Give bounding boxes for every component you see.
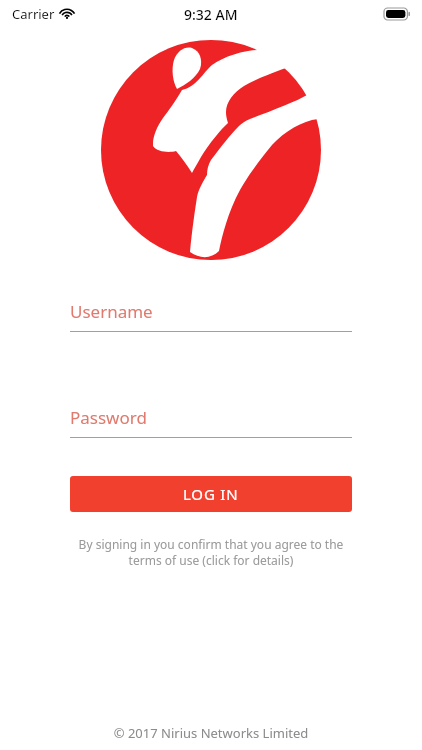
button[interactable]: LOG IN: [70, 476, 352, 512]
button[interactable]: Password: [70, 406, 352, 438]
staticText: © 2017 Nirius Networks Limited: [0, 724, 422, 742]
staticText: Carrier: [12, 5, 55, 23]
staticText: Password: [70, 406, 147, 429]
staticText: 9:32 AM: [184, 5, 238, 24]
staticText: By signing in you confirm that you agree…: [60, 536, 362, 569]
staticText: LOG IN: [183, 484, 239, 504]
staticText: Username: [70, 300, 153, 323]
button[interactable]: Username: [70, 300, 352, 332]
